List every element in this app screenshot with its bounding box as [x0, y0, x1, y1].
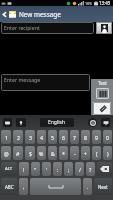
staticText: 0: [106, 134, 109, 141]
button[interactable]: 1: [1, 130, 11, 144]
button[interactable]: [97, 162, 112, 176]
button[interactable]: ,: [19, 178, 28, 195]
staticText: ;: [68, 166, 70, 173]
staticText: 9: [95, 134, 98, 141]
staticText: &: [51, 150, 55, 157]
button[interactable]: $: [25, 146, 35, 160]
button[interactable]: ): [103, 146, 112, 160]
staticText: *: [62, 150, 65, 157]
staticText: 2: [17, 134, 20, 141]
button[interactable]: .: [83, 178, 92, 195]
button[interactable]: -: [70, 146, 79, 160]
button[interactable]: 8: [81, 130, 90, 144]
staticText: New message: [19, 10, 61, 19]
button[interactable]: *: [59, 146, 68, 160]
button[interactable]: &: [48, 146, 57, 160]
staticText: ABC: [5, 184, 14, 190]
button[interactable]: ABC: [1, 178, 17, 195]
button[interactable]: Settings: [88, 118, 97, 127]
staticText: Enter recipient: [4, 24, 40, 31]
button[interactable]: @: [1, 146, 11, 160]
staticText: ": [34, 166, 37, 173]
button[interactable]: Input mode: [96, 88, 109, 99]
button[interactable]: +: [81, 146, 90, 160]
button[interactable]: 5: [48, 130, 57, 144]
button[interactable]: 3: [25, 130, 35, 144]
button[interactable]: :: [53, 162, 62, 176]
button[interactable]: Hide keyboard: [101, 118, 110, 127]
staticText: 5: [51, 134, 54, 141]
button[interactable]: ': [42, 162, 51, 176]
button[interactable]: Enter recipient: [1, 22, 94, 34]
staticText: English: [48, 119, 66, 126]
staticText: 6: [62, 134, 65, 141]
staticText: 18%: [85, 1, 93, 6]
staticText: ,: [23, 183, 25, 190]
button[interactable]: ?: [86, 162, 95, 176]
button[interactable]: Attach: [93, 102, 111, 115]
staticText: 3: [29, 134, 32, 141]
button[interactable]: 4: [37, 130, 46, 144]
button[interactable]: ": [31, 162, 40, 176]
button[interactable]: !: [19, 162, 29, 176]
staticText: +: [84, 150, 87, 157]
button[interactable]: Voice input: [16, 118, 26, 127]
button[interactable]: (: [92, 146, 101, 160]
staticText: :: [57, 166, 59, 173]
button[interactable]: 7: [70, 130, 79, 144]
button[interactable]: English: [40, 118, 74, 127]
button[interactable]: 0: [103, 130, 112, 144]
staticText: 1: [5, 134, 8, 141]
staticText: ): [107, 150, 109, 157]
staticText: ?: [89, 166, 92, 173]
button[interactable]: Symbols: [3, 118, 12, 127]
staticText: (: [96, 150, 98, 157]
staticText: @: [4, 150, 9, 157]
button[interactable]: [30, 178, 81, 195]
staticText: Next: [98, 184, 108, 190]
staticText: ALT: [5, 166, 13, 172]
staticText: Text: [98, 80, 107, 86]
button[interactable]: 2: [13, 130, 23, 144]
button[interactable]: Next: [94, 178, 112, 195]
button[interactable]: 9: [92, 130, 101, 144]
button[interactable]: 6: [59, 130, 68, 144]
button[interactable]: Contacts: [96, 22, 112, 34]
staticText: 8: [84, 134, 87, 141]
staticText: !: [23, 166, 25, 173]
button[interactable]: ALT: [1, 162, 17, 176]
button[interactable]: /: [75, 162, 84, 176]
staticText: #: [16, 150, 20, 157]
staticText: /: [79, 166, 81, 173]
staticText: .: [87, 183, 89, 190]
staticText: $: [29, 150, 32, 157]
staticText: Enter message: [4, 76, 41, 83]
button[interactable]: Enter message: [1, 74, 90, 91]
button[interactable]: #: [13, 146, 23, 160]
button[interactable]: Back: [0, 6, 9, 22]
button[interactable]: %: [37, 146, 46, 160]
staticText: ': [46, 166, 48, 173]
staticText: -: [74, 150, 76, 157]
staticText: 13:45: [99, 0, 111, 6]
button[interactable]: ;: [64, 162, 73, 176]
staticText: 7: [73, 134, 76, 141]
staticText: %: [39, 150, 44, 157]
staticText: 4: [40, 134, 43, 141]
